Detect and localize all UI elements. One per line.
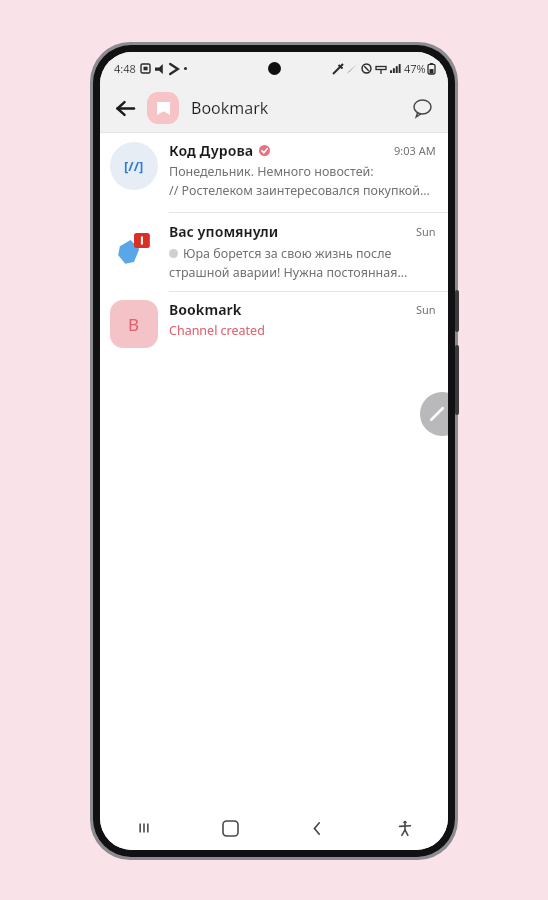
- button[interactable]: Вас упомянули: [100, 213, 448, 291]
- staticText: Bookmark: [191, 97, 269, 119]
- staticText: B: [128, 313, 140, 336]
- button[interactable]: Compose: [420, 392, 448, 436]
- staticText: 9:03 AM: [394, 143, 436, 158]
- button[interactable]: B: [100, 292, 448, 356]
- staticText: [//]: [124, 157, 144, 175]
- staticText: Sun: [416, 224, 436, 239]
- staticText: страшной аварии! Нужна постоянная…: [169, 264, 408, 281]
- button[interactable]: Recents: [100, 806, 187, 850]
- button[interactable]: Messages: [404, 90, 440, 126]
- staticText: Понедельник. Немного новостей:: [169, 163, 374, 180]
- staticText: Юра борется за свою жизнь после: [183, 245, 392, 262]
- staticText: // Ростелеком заинтересовался покупкой…: [169, 182, 430, 199]
- staticText: Sun: [416, 302, 436, 317]
- button[interactable]: Home: [187, 806, 274, 850]
- button[interactable]: Back: [274, 806, 361, 850]
- staticText: Channel created: [169, 322, 265, 339]
- button[interactable]: [//]: [100, 133, 448, 212]
- staticText: Bookmark: [169, 300, 242, 319]
- button[interactable]: Back: [106, 89, 144, 127]
- button[interactable]: Accessibility: [361, 806, 448, 850]
- staticText: Вас упомянули: [169, 222, 279, 241]
- staticText: 47%: [404, 61, 426, 76]
- staticText: Код Дурова: [169, 141, 254, 160]
- staticText: 4:48: [114, 61, 136, 76]
